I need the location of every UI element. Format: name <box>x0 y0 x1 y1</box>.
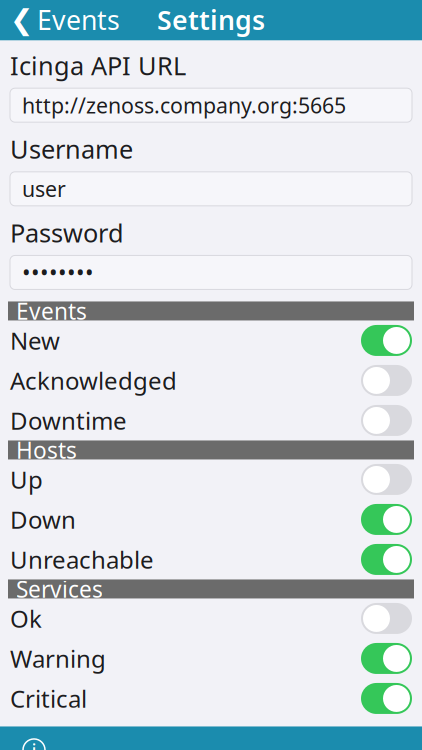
staticText: Unreachable <box>10 543 154 575</box>
staticText: Ok <box>10 602 42 634</box>
staticText: Username <box>10 132 133 166</box>
staticText: Icinga API URL <box>10 48 186 82</box>
staticText: Settings <box>157 2 265 37</box>
staticText: ❮ <box>10 4 33 35</box>
button[interactable]: Acknowledged <box>0 360 422 400</box>
button[interactable]: user <box>10 172 412 206</box>
staticText: New <box>10 324 60 356</box>
staticText: Downtime <box>10 404 127 436</box>
button[interactable]: http://zenoss.company.org:5665 <box>10 88 412 122</box>
button[interactable]: New <box>0 320 422 360</box>
button[interactable]: Critical <box>0 678 422 718</box>
staticText: http://zenoss.company.org:5665 <box>22 91 346 119</box>
staticText: Acknowledged <box>10 364 177 396</box>
button[interactable]: Down <box>0 499 422 539</box>
button[interactable]: Downtime <box>0 400 422 440</box>
staticText: Events <box>16 296 87 326</box>
button[interactable]: Unreachable <box>0 539 422 579</box>
button[interactable]: Up <box>0 459 422 499</box>
staticText: i <box>31 738 36 750</box>
staticText: Critical <box>10 682 87 714</box>
button[interactable]: Info <box>14 730 54 750</box>
button[interactable]: •••••••• <box>10 255 412 289</box>
staticText: Password <box>10 216 124 249</box>
staticText: Warning <box>10 642 106 674</box>
staticText: Hosts <box>16 435 77 465</box>
button[interactable]: ❮ <box>0 0 120 43</box>
staticText: Events <box>37 2 120 37</box>
button[interactable]: Warning <box>0 638 422 678</box>
staticText: user <box>22 175 66 203</box>
staticText: Up <box>10 463 43 495</box>
staticText: Down <box>10 503 76 535</box>
staticText: Services <box>16 574 103 604</box>
button[interactable]: Ok <box>0 598 422 638</box>
staticText: •••••••• <box>22 257 94 287</box>
